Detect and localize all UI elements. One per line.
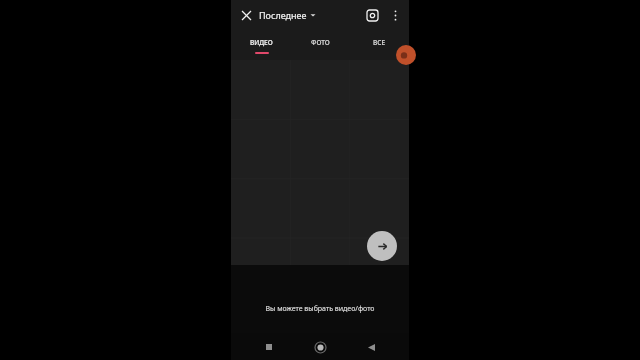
staticText: Вы можете выбрать видео/фото: [265, 304, 375, 314]
button[interactable]: Далее: [367, 231, 397, 261]
button[interactable]: ВСЕ: [350, 30, 409, 60]
button[interactable]: ВИДЕО: [231, 30, 291, 60]
button[interactable]: Профиль: [396, 45, 416, 65]
staticText: ВИДЕО: [250, 38, 273, 47]
staticText: Последнее: [259, 9, 307, 21]
button[interactable]: Назад: [358, 334, 384, 360]
button[interactable]: Последнее: [259, 9, 316, 21]
button[interactable]: Закрыть: [235, 4, 257, 26]
staticText: ФОТО: [311, 38, 330, 47]
button[interactable]: Ещё: [385, 5, 405, 25]
button[interactable]: Камера: [361, 4, 383, 26]
button[interactable]: Недавние: [256, 334, 282, 360]
button[interactable]: Главный экран: [307, 334, 333, 360]
staticText: ВСЕ: [373, 38, 386, 47]
button[interactable]: ФОТО: [291, 30, 350, 60]
